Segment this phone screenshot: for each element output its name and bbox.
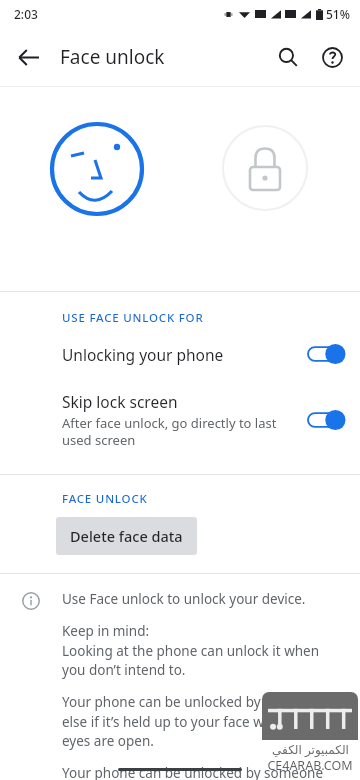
staticText: Your phone can be unlocked by someone wh…: [62, 764, 340, 780]
staticText: Face unlock: [60, 44, 165, 70]
button[interactable]: Unlocking your phone: [0, 330, 360, 378]
button[interactable]: Delete face data: [56, 517, 197, 555]
staticText: Keep in mind: Looking at the phone can u…: [62, 622, 340, 679]
staticText: CE4ARAB.COM: [267, 757, 353, 774]
button[interactable]: Toggle: [308, 409, 344, 431]
staticText: الكمبيوتر الكفي: [272, 741, 349, 757]
staticText: 2:03: [14, 6, 38, 22]
staticText: 51%: [326, 6, 350, 22]
button[interactable]: Back: [6, 35, 50, 79]
button[interactable]: Skip lock screen: [0, 378, 360, 462]
staticText: Unlocking your phone: [62, 344, 224, 365]
staticText: Skip lock screen: [62, 391, 178, 412]
staticText: Your phone can be unlocked by someone el…: [62, 693, 340, 750]
staticText: USE FACE UNLOCK FOR: [62, 310, 204, 326]
button[interactable]: Help: [310, 35, 354, 79]
button[interactable]: Search: [266, 35, 310, 79]
button[interactable]: Toggle: [308, 343, 344, 365]
staticText: Delete face data: [70, 526, 183, 546]
staticText: Use Face unlock to unlock your device.: [62, 590, 306, 608]
staticText: FACE UNLOCK: [62, 491, 148, 507]
staticText: After face unlock, go directly to last u…: [62, 414, 294, 449]
